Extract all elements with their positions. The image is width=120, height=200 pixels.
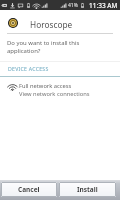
button[interactable]: Cancel bbox=[1, 182, 57, 197]
staticText: DEVICE ACCESS bbox=[8, 65, 49, 72]
staticText: Install bbox=[77, 185, 98, 194]
staticText: 41% bbox=[68, 2, 78, 9]
staticText: Full network access bbox=[19, 82, 72, 90]
button[interactable]: Install bbox=[59, 182, 116, 197]
staticText: Do you want to install this application? bbox=[7, 39, 80, 54]
staticText: 11:33 AM bbox=[89, 1, 118, 10]
staticText: Horoscope bbox=[30, 19, 73, 30]
staticText: Cancel bbox=[18, 185, 40, 194]
other: Network access bbox=[8, 83, 17, 91]
staticText: View network connections bbox=[19, 90, 90, 98]
